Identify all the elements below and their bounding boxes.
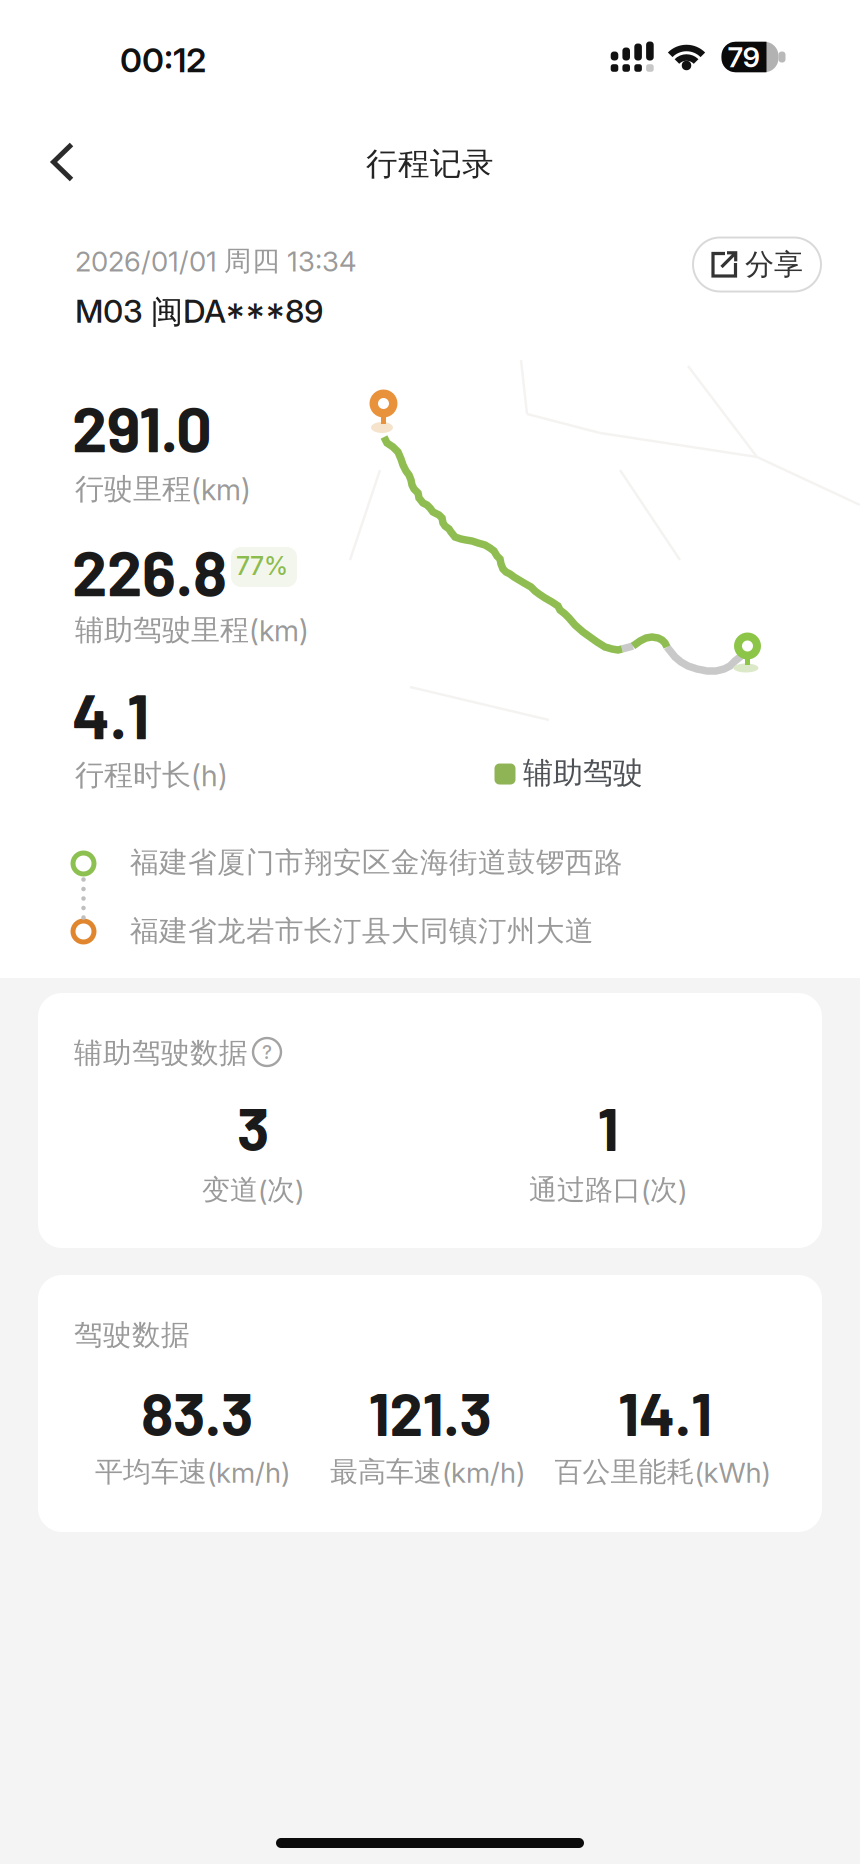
staticText: 291.0: [72, 389, 212, 465]
staticText: 77%: [236, 551, 288, 581]
staticText: 福建省厦门市翔安区金海街道鼓锣西路: [130, 844, 623, 880]
staticText: 83.3: [141, 1376, 253, 1448]
staticText: 通过路口(次): [529, 1172, 687, 1208]
staticText: 3: [237, 1091, 269, 1163]
staticText: 1: [597, 1091, 618, 1163]
button[interactable]: 返回: [32, 132, 92, 192]
staticText: 14.1: [618, 1376, 712, 1448]
staticText: ?: [262, 1040, 272, 1063]
staticText: 福建省龙岩市长汀县大同镇汀州大道: [130, 913, 594, 949]
staticText: 2026/01/01 周四 13:34: [75, 244, 356, 278]
staticText: 百公里能耗(kWh): [554, 1454, 770, 1490]
staticText: 辅助驾驶里程(km): [75, 612, 309, 648]
staticText: 226.8: [72, 533, 227, 609]
staticText: 分享: [745, 246, 803, 283]
staticText: 最高车速(km/h): [330, 1454, 525, 1490]
staticText: 00:12: [120, 39, 206, 80]
button[interactable]: 分享: [693, 237, 821, 291]
staticText: 4.1: [72, 676, 149, 752]
staticText: 平均车速(km/h): [95, 1454, 290, 1490]
staticText: 变道(次): [202, 1172, 304, 1208]
staticText: M03 闽DA***89: [75, 292, 324, 332]
button[interactable]: 辅助驾驶数据说明: [250, 1035, 284, 1069]
staticText: 79: [727, 40, 760, 74]
staticText: 行程记录: [366, 144, 494, 184]
staticText: 辅助驾驶: [523, 754, 643, 792]
staticText: 121.3: [368, 1376, 491, 1448]
staticText: 行程时长(h): [75, 757, 228, 793]
staticText: 行驶里程(km): [75, 471, 251, 507]
staticText: 驾驶数据: [74, 1317, 190, 1353]
staticText: 辅助驾驶数据: [74, 1035, 248, 1071]
